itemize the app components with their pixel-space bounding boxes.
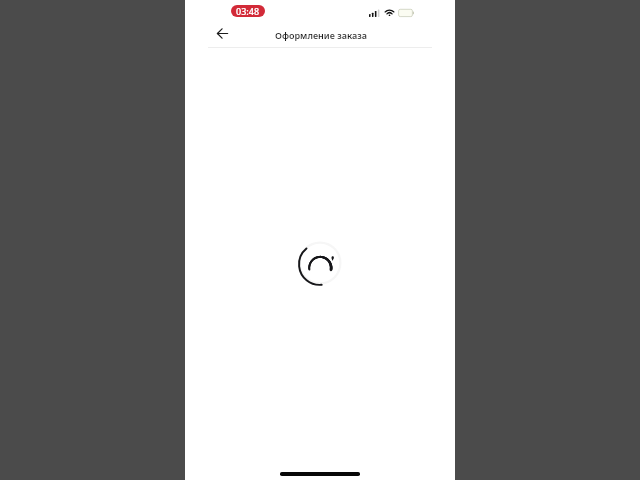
- staticText: 03:48: [236, 5, 260, 17]
- button[interactable]: Назад: [210, 21, 234, 45]
- staticText: Оформление заказа: [275, 29, 368, 41]
